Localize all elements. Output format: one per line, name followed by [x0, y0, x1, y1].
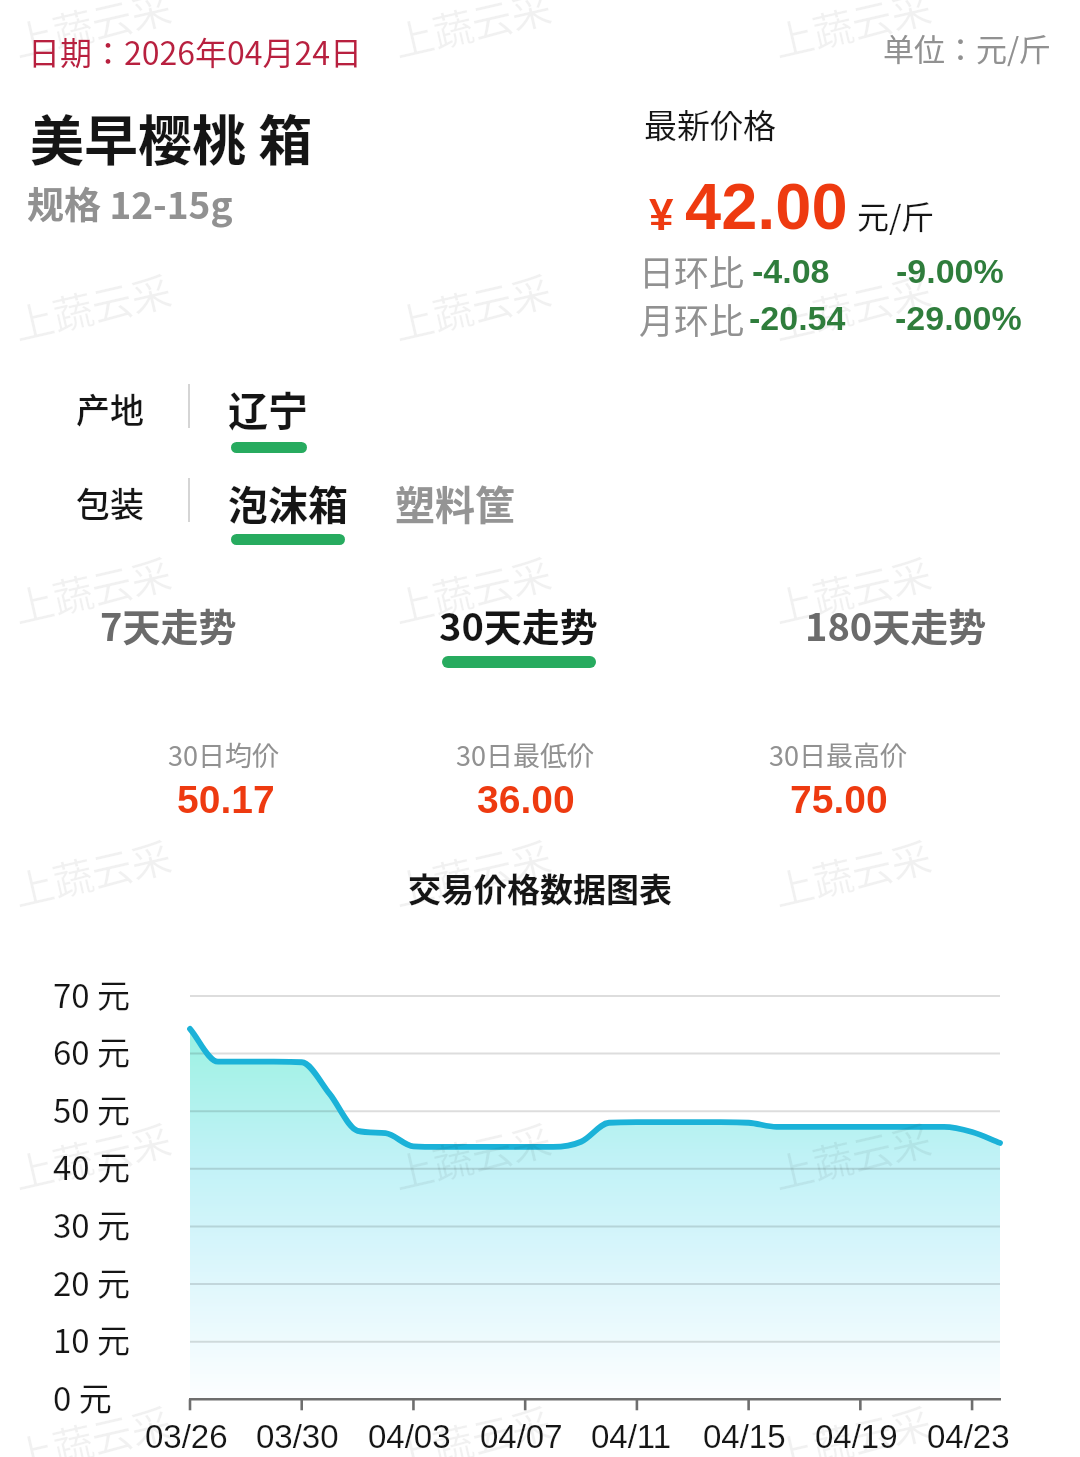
- staticText: 规格 12-15g: [27, 176, 233, 230]
- staticText: 最新价格: [644, 100, 776, 148]
- staticText: 60 元: [53, 1027, 131, 1075]
- staticText: 上蔬云采: [767, 0, 936, 69]
- staticText: -4.08: [752, 252, 830, 290]
- button[interactable]: 塑料筐: [388, 468, 520, 552]
- staticText: 03/26: [145, 1418, 228, 1455]
- staticText: 泡沫箱: [228, 474, 348, 532]
- staticText: 30天走势: [439, 597, 598, 652]
- staticText: 30日最低价: [456, 735, 594, 774]
- staticText: 上蔬云采: [767, 1392, 936, 1457]
- button[interactable]: 7天走势: [70, 590, 270, 680]
- staticText: 交易价格数据图表: [408, 864, 672, 912]
- staticText: -29.00%: [895, 299, 1022, 337]
- staticText: 上蔬云采: [387, 1392, 556, 1457]
- staticText: 日期：2026年04月24日: [28, 28, 363, 74]
- staticText: 75.00: [790, 778, 888, 822]
- staticText: 上蔬云采: [387, 0, 556, 69]
- staticText: 20 元: [53, 1258, 131, 1306]
- staticText: 塑料筐: [395, 474, 515, 532]
- staticText: 元/斤: [857, 192, 934, 238]
- staticText: -20.54: [749, 299, 846, 337]
- button[interactable]: 180天走势: [775, 590, 1015, 680]
- staticText: 上蔬云采: [7, 1392, 176, 1457]
- staticText: 04/15: [703, 1418, 786, 1455]
- staticText: 42.00: [685, 170, 848, 243]
- staticText: 上蔬云采: [387, 260, 556, 352]
- staticText: 04/23: [927, 1418, 1010, 1455]
- staticText: 04/19: [815, 1418, 898, 1455]
- staticText: 辽宁: [228, 380, 308, 438]
- staticText: 上蔬云采: [767, 543, 936, 635]
- staticText: 日环比: [639, 245, 745, 296]
- staticText: 上蔬云采: [7, 1109, 176, 1201]
- staticText: 上蔬云采: [7, 0, 176, 69]
- staticText: 美早樱桃 箱: [30, 98, 313, 176]
- staticText: 0 元: [53, 1373, 112, 1421]
- staticText: 04/07: [480, 1418, 563, 1455]
- staticText: 上蔬云采: [767, 826, 936, 918]
- staticText: 上蔬云采: [767, 260, 936, 352]
- staticText: 上蔬云采: [387, 1109, 556, 1201]
- staticText: 上蔬云采: [387, 543, 556, 635]
- staticText: 50.17: [177, 778, 275, 822]
- button[interactable]: 泡沫箱: [221, 468, 353, 552]
- staticText: 36.00: [477, 778, 575, 822]
- staticText: 180天走势: [805, 597, 987, 652]
- staticText: 30日最高价: [769, 735, 907, 774]
- staticText: 包装: [76, 478, 144, 527]
- staticText: 10 元: [53, 1315, 131, 1363]
- button[interactable]: 30天走势: [409, 590, 629, 680]
- staticText: 上蔬云采: [7, 543, 176, 635]
- staticText: 04/11: [591, 1418, 672, 1455]
- staticText: 上蔬云采: [767, 1109, 936, 1201]
- staticText: 上蔬云采: [7, 826, 176, 918]
- staticText: 单位：元/斤: [883, 25, 1051, 70]
- staticText: 03/30: [256, 1418, 339, 1455]
- staticText: 上蔬云采: [387, 826, 556, 918]
- staticText: ¥: [649, 190, 674, 239]
- staticText: 04/03: [368, 1418, 451, 1455]
- staticText: -9.00%: [896, 252, 1004, 290]
- staticText: 上蔬云采: [7, 260, 176, 352]
- staticText: 40 元: [53, 1142, 131, 1190]
- staticText: 月环比: [639, 293, 745, 344]
- staticText: 50 元: [53, 1085, 131, 1133]
- staticText: 30日均价: [168, 735, 279, 774]
- staticText: 产地: [76, 384, 144, 433]
- staticText: 7天走势: [100, 597, 237, 652]
- staticText: 30 元: [53, 1200, 131, 1248]
- staticText: 70 元: [53, 970, 131, 1018]
- button[interactable]: 辽宁: [221, 374, 315, 460]
